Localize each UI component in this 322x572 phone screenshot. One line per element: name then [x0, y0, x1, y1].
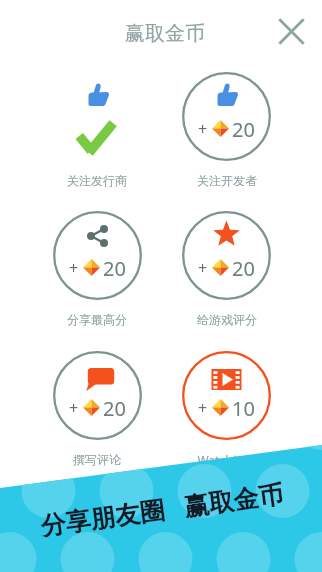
staticText: 分享朋友圈 赢取金币: [38, 476, 285, 538]
staticText: Watch视频: [197, 452, 257, 468]
staticText: 20: [232, 116, 255, 141]
staticText: 关注发行商: [67, 173, 127, 188]
button[interactable]: [53, 72, 142, 161]
staticText: 20: [103, 255, 126, 280]
button[interactable]: +: [182, 72, 271, 161]
staticText: +: [198, 397, 208, 419]
staticText: 给游戏评分: [197, 312, 257, 327]
staticText: 20: [232, 255, 255, 280]
staticText: 20: [103, 395, 126, 420]
button[interactable]: +: [53, 211, 142, 300]
staticText: 赢取金币: [125, 21, 205, 46]
staticText: +: [198, 118, 208, 140]
button[interactable]: +: [182, 351, 271, 440]
button[interactable]: Close: [274, 14, 309, 49]
staticText: 10: [232, 395, 255, 420]
button[interactable]: +: [182, 211, 271, 300]
button[interactable]: +: [53, 351, 142, 440]
staticText: +: [69, 257, 79, 279]
staticText: 关注开发者: [197, 173, 257, 188]
staticText: +: [69, 397, 79, 419]
staticText: 分享最高分: [67, 312, 127, 327]
staticText: 撰写评论: [73, 452, 121, 467]
staticText: +: [198, 257, 208, 279]
